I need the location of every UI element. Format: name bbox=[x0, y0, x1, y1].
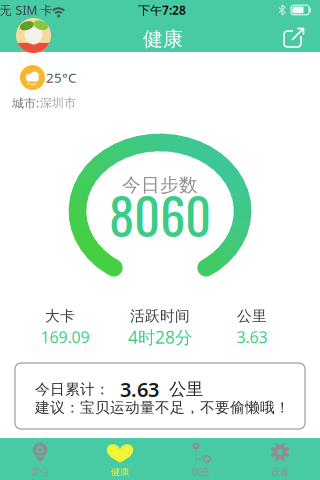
staticText: 169.09 bbox=[40, 326, 89, 348]
staticText: 城市: bbox=[12, 95, 39, 111]
staticText: 公里 bbox=[237, 307, 267, 325]
staticText: 建议：宝贝运动量不足，不要偷懒哦！ bbox=[35, 398, 290, 416]
staticText: 设置 bbox=[271, 466, 289, 478]
staticText: 今日累计： bbox=[35, 380, 110, 398]
button[interactable] bbox=[15, 17, 51, 53]
staticText: 下午7:28 bbox=[138, 2, 186, 18]
staticText: 4时28分 bbox=[128, 325, 192, 348]
button[interactable]: 定位 bbox=[0, 438, 80, 480]
staticText: 轨迹 bbox=[191, 466, 209, 478]
staticText: 3.63 bbox=[120, 376, 159, 403]
button[interactable]: 健康 bbox=[80, 438, 160, 480]
staticText: 无 SIM 卡 bbox=[0, 2, 52, 18]
staticText: 健康 bbox=[143, 27, 183, 51]
staticText: 大卡 bbox=[45, 307, 75, 325]
button[interactable] bbox=[278, 23, 308, 51]
staticText: 公里 bbox=[169, 379, 203, 400]
button[interactable]: 轨迹 bbox=[160, 438, 240, 480]
staticText: 8060 bbox=[109, 176, 211, 252]
staticText: 3.63 bbox=[236, 326, 267, 348]
button[interactable]: 设置 bbox=[240, 438, 320, 480]
staticText: 活跃时间 bbox=[130, 307, 190, 325]
staticText: 深圳市 bbox=[40, 96, 76, 110]
staticText: 今日步数 bbox=[122, 173, 198, 196]
staticText: 25°C bbox=[46, 69, 76, 86]
staticText: 健康 bbox=[111, 466, 129, 478]
staticText: 定位 bbox=[31, 466, 49, 478]
